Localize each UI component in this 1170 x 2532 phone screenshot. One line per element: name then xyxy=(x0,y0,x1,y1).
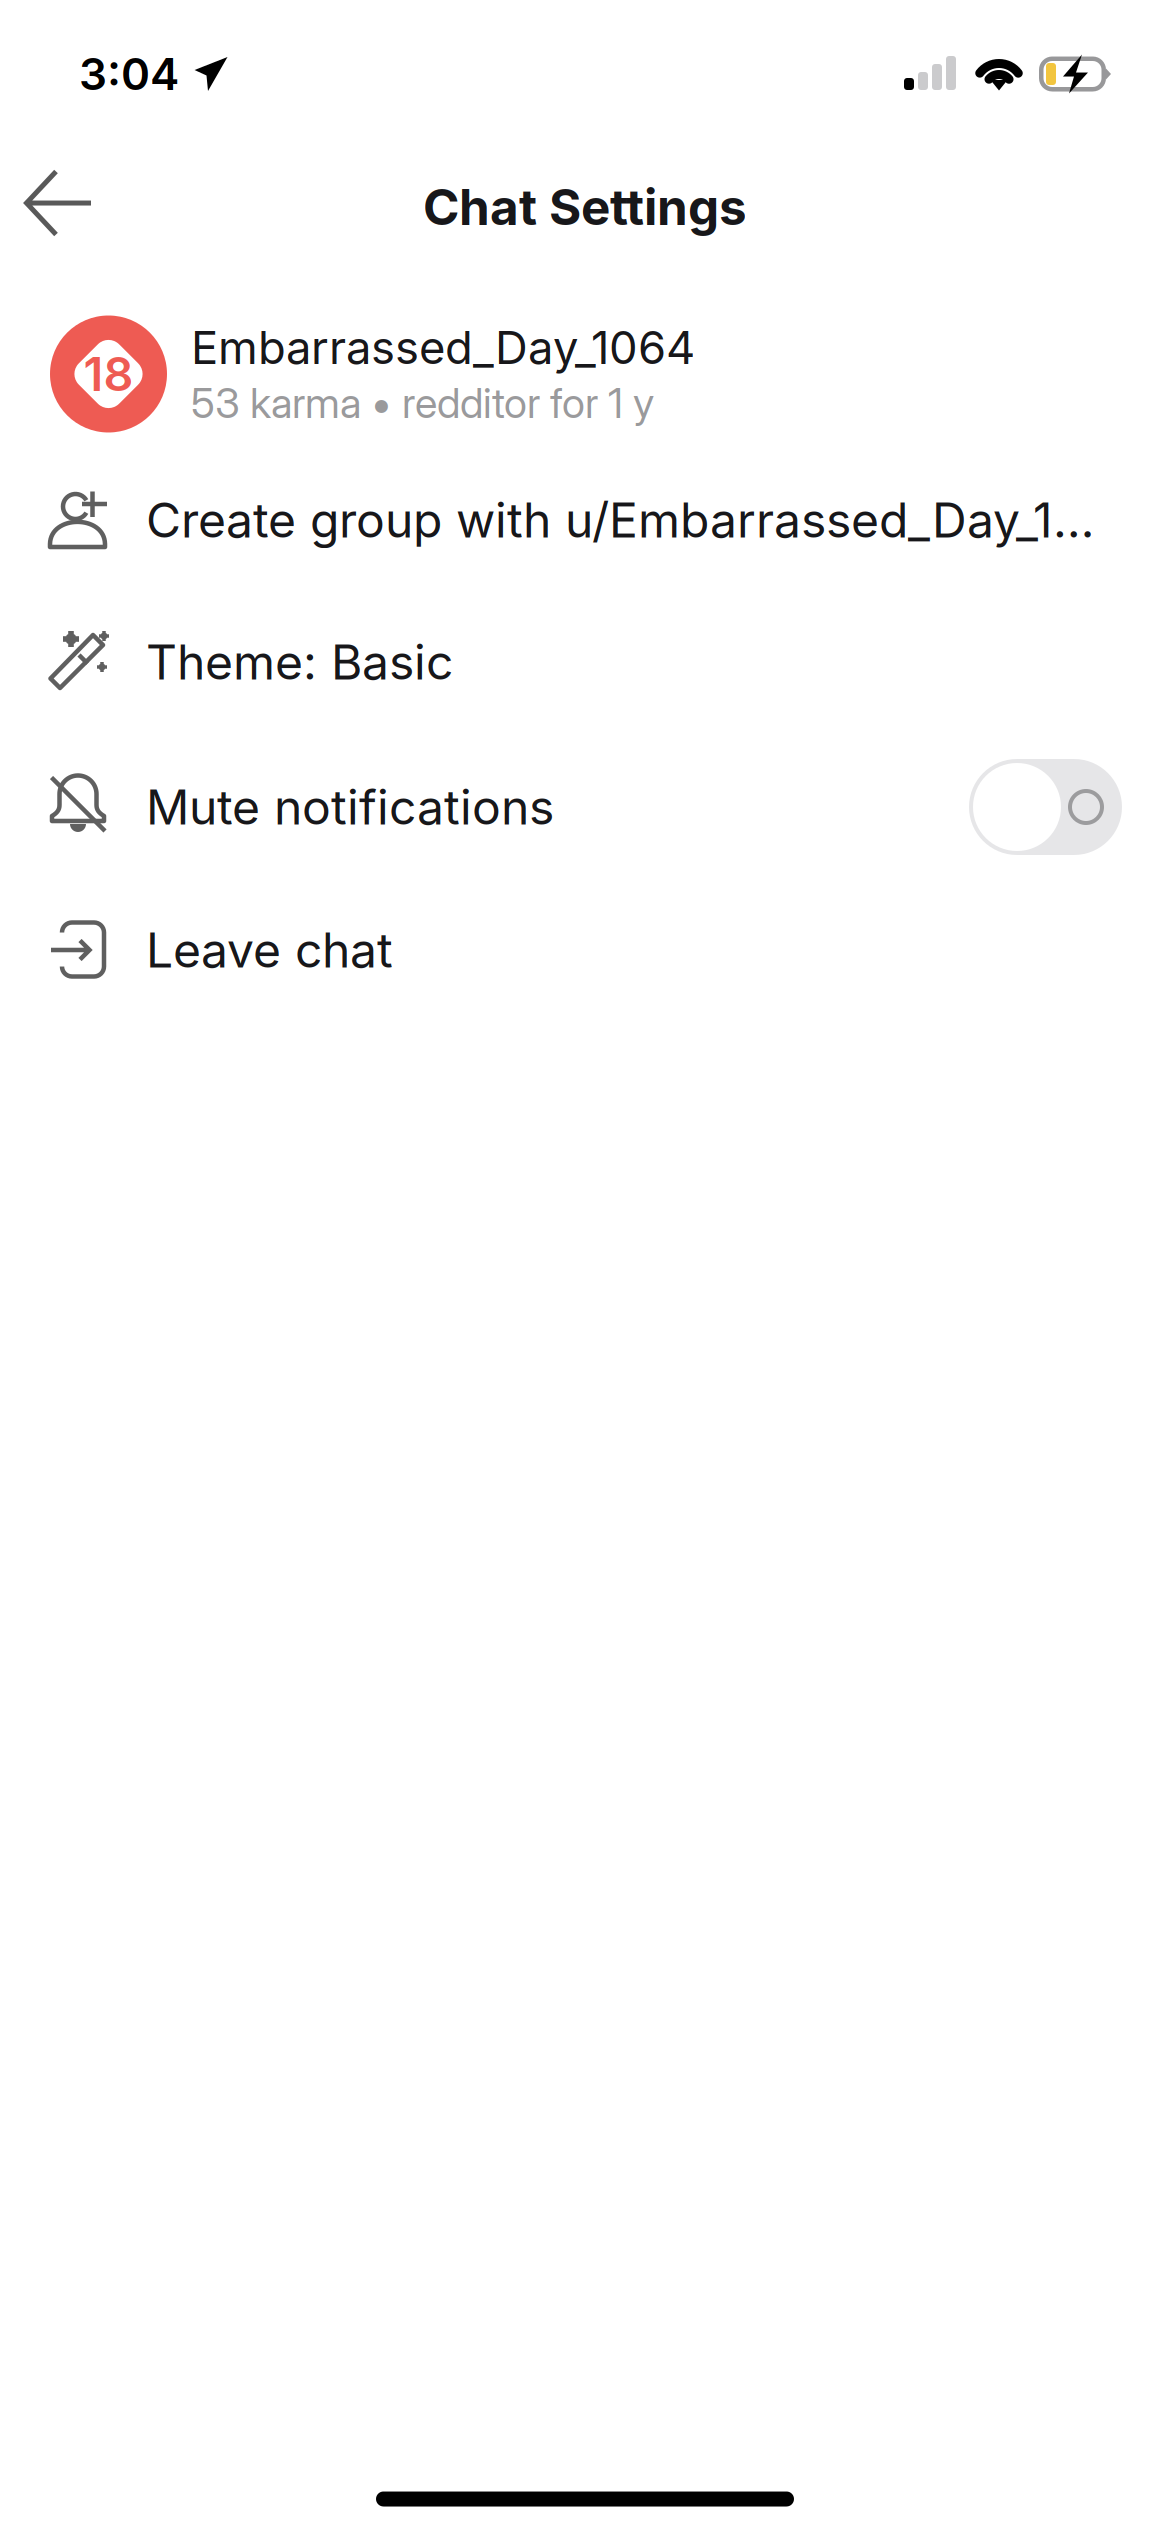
button[interactable]: Create group with u/Embarrassed_Day_1… xyxy=(0,448,1170,591)
staticText: Chat Settings xyxy=(423,177,747,237)
button[interactable]: 18 xyxy=(0,299,1170,449)
staticText: Embarrassed_Day_1064 xyxy=(191,320,695,375)
staticText: 53 karma • redditor for 1 y xyxy=(191,378,654,428)
staticText: 3:04 xyxy=(79,47,179,101)
button[interactable]: Back xyxy=(0,137,125,269)
staticText: Create group with u/Embarrassed_Day_1… xyxy=(146,491,1094,549)
staticText: Mute notifications xyxy=(146,778,554,836)
staticText: Theme: Basic xyxy=(146,633,453,691)
staticText: Leave chat xyxy=(146,921,393,979)
button[interactable]: Theme: Basic xyxy=(0,590,1170,733)
button[interactable]: Mute notifications xyxy=(0,735,1170,878)
button[interactable]: Leave chat xyxy=(0,878,1170,1021)
staticText: 18 xyxy=(83,346,133,402)
